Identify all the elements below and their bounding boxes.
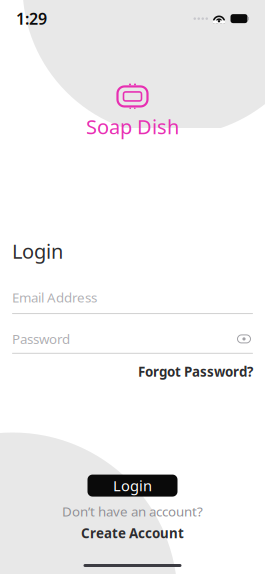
staticText: Login [113,476,152,495]
staticText: 1:29 [16,8,47,29]
staticText: Forgot Password? [138,363,253,380]
staticText: Create Account [81,524,184,542]
button[interactable]: Create Account [81,524,184,542]
staticText: Soap Dish [86,113,179,140]
button[interactable]: Login [87,475,177,497]
staticText: Don’t have an account? [62,503,203,520]
staticText: Email Address [12,288,97,306]
button[interactable]: Forgot Password? [138,363,253,380]
staticText: Password [12,330,70,348]
staticText: Login [12,238,63,264]
button[interactable]: Show password [235,332,253,346]
